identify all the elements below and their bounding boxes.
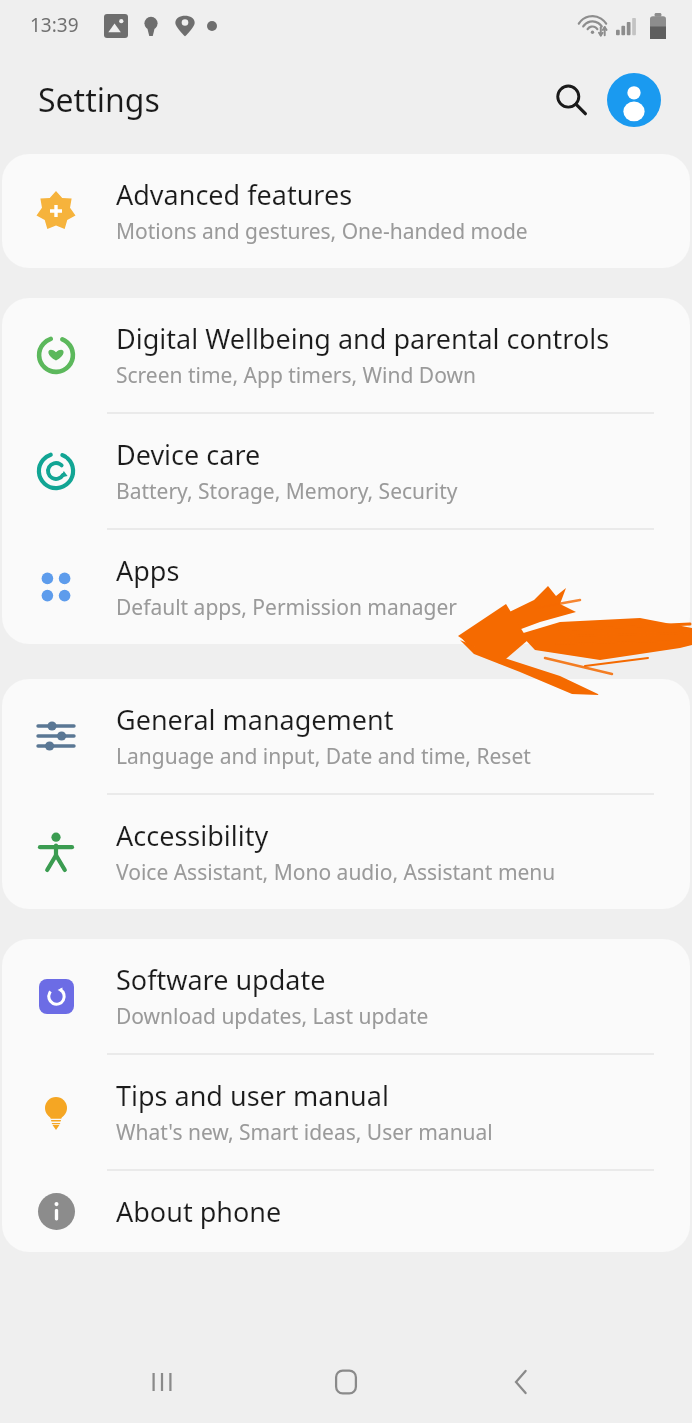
button[interactable]: Recents — [122, 1342, 202, 1422]
staticText: General management — [116, 701, 394, 738]
button[interactable]: Apps — [2, 530, 690, 644]
staticText: Advanced features — [116, 176, 353, 213]
button[interactable]: Software update — [2, 939, 690, 1053]
staticText: What's new, Smart ideas, User manual — [116, 1118, 493, 1147]
staticText: 13:39 — [30, 12, 79, 38]
button[interactable]: Search — [545, 74, 597, 126]
staticText: Default apps, Permission manager — [116, 593, 457, 622]
staticText: Motions and gestures, One-handed mode — [116, 217, 528, 246]
button[interactable]: Account — [607, 73, 661, 127]
staticText: Accessibility — [116, 817, 269, 854]
staticText: Language and input, Date and time, Reset — [116, 742, 531, 771]
staticText: Download updates, Last update — [116, 1002, 429, 1031]
staticText: Screen time, App timers, Wind Down — [116, 361, 476, 390]
button[interactable]: Home — [306, 1342, 386, 1422]
button[interactable]: Advanced features — [2, 154, 690, 268]
staticText: Tips and user manual — [116, 1077, 389, 1114]
staticText: Settings — [38, 78, 160, 122]
button[interactable]: General management — [2, 679, 690, 793]
staticText: Device care — [116, 436, 261, 473]
button[interactable]: About phone — [2, 1171, 690, 1252]
staticText: Software update — [116, 961, 326, 998]
button[interactable]: Digital Wellbeing and parental controls — [2, 298, 690, 412]
staticText: Battery, Storage, Memory, Security — [116, 477, 458, 506]
staticText: Digital Wellbeing and parental controls — [116, 320, 610, 357]
staticText: About phone — [116, 1193, 282, 1230]
button[interactable]: Accessibility — [2, 795, 690, 909]
button[interactable]: Back — [482, 1342, 562, 1422]
staticText: Voice Assistant, Mono audio, Assistant m… — [116, 858, 556, 887]
button[interactable]: Tips and user manual — [2, 1055, 690, 1169]
button[interactable]: Device care — [2, 414, 690, 528]
staticText: Apps — [116, 552, 180, 589]
